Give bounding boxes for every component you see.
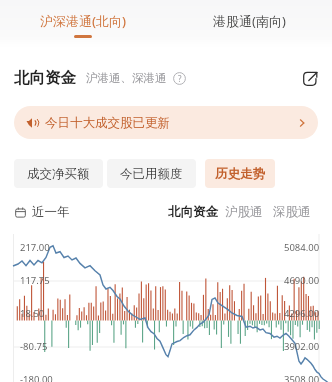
button[interactable]: 沪股通 [225, 204, 263, 220]
button[interactable]: 今日十大成交股已更新 [14, 106, 318, 139]
button[interactable]: 今已用额度 [107, 159, 196, 188]
staticText: 3902.00 [284, 340, 320, 353]
button[interactable]: 北向资金 [168, 204, 218, 220]
staticText: 沪港通、深港通 [86, 71, 167, 85]
button[interactable]: 深股通 [273, 204, 311, 220]
button[interactable]: 成交净买额 [14, 159, 103, 188]
button[interactable]: Share [302, 70, 319, 87]
staticText: 18.50 [20, 307, 45, 320]
button[interactable]: 港股通(南向) [166, 0, 332, 48]
staticText: ? [178, 73, 182, 84]
staticText: 3508.00 [284, 373, 320, 382]
staticText: 今已用额度 [120, 166, 183, 182]
staticText: 深股通 [273, 204, 311, 220]
staticText: 沪深港通(北向) [40, 12, 127, 30]
button[interactable]: 沪深港通(北向) [0, 0, 166, 48]
button[interactable]: 近一年 [15, 204, 70, 220]
button[interactable]: Help [173, 72, 186, 85]
staticText: 117.75 [20, 274, 50, 287]
staticText: 4296.00 [284, 307, 320, 320]
staticText: 历史走势 [215, 166, 265, 182]
other: More [297, 118, 307, 128]
staticText: -180.00 [20, 373, 53, 382]
button[interactable]: 历史走势 [205, 159, 275, 188]
staticText: 沪股通 [225, 204, 263, 220]
staticText: 4690.00 [284, 274, 320, 287]
staticText: 217.00 [20, 241, 50, 254]
staticText: 5084.00 [284, 241, 320, 254]
staticText: -80.75 [20, 340, 48, 353]
staticText: 成交净买额 [27, 166, 90, 182]
staticText: 北向资金 [14, 68, 76, 88]
staticText: 北向资金 [168, 204, 218, 220]
staticText: 港股通(南向) [213, 12, 286, 30]
staticText: 今日十大成交股已更新 [45, 115, 170, 131]
staticText: 近一年 [32, 204, 70, 220]
